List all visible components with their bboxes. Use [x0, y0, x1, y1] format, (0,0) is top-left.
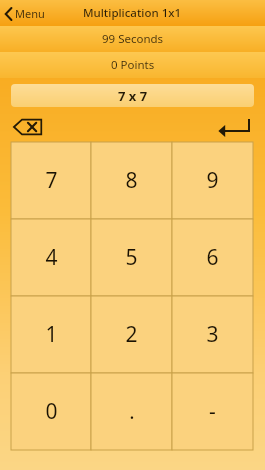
button[interactable]: 0 [11, 373, 91, 450]
staticText: 3 [206, 320, 219, 349]
staticText: 0 [45, 397, 58, 426]
button[interactable]: 4 [11, 219, 91, 296]
button[interactable]: Enter [214, 114, 254, 140]
staticText: 5 [125, 243, 138, 272]
staticText: 2 [125, 320, 138, 349]
button[interactable]: 5 [91, 219, 172, 296]
button[interactable]: 1 [11, 296, 91, 373]
button[interactable]: Backspace [11, 114, 45, 140]
button[interactable]: 3 [172, 296, 253, 373]
button[interactable]: 7 x 7 [11, 84, 254, 107]
staticText: 9 [206, 166, 219, 195]
button[interactable]: 99 Seconds [0, 26, 265, 52]
staticText: 7 x 7 [118, 87, 148, 105]
button[interactable]: . [91, 373, 172, 450]
button[interactable]: 6 [172, 219, 253, 296]
staticText: Multiplication 1x1 [83, 5, 182, 21]
button[interactable]: - [172, 373, 253, 450]
button[interactable]: 8 [91, 142, 172, 219]
staticText: . [129, 398, 135, 425]
button[interactable]: 9 [172, 142, 253, 219]
staticText: Menu [15, 6, 45, 21]
button[interactable]: 2 [91, 296, 172, 373]
staticText: 7 [45, 166, 58, 195]
staticText: 1 [45, 320, 58, 349]
staticText: 6 [206, 243, 219, 272]
staticText: 4 [45, 243, 58, 272]
staticText: 0 Points [111, 57, 155, 73]
button[interactable]: Menu [0, 3, 53, 24]
staticText: - [209, 397, 216, 426]
button[interactable]: 0 Points [0, 52, 265, 78]
button[interactable]: 7 [11, 142, 91, 219]
staticText: 8 [125, 166, 138, 195]
staticText: 99 Seconds [102, 31, 164, 47]
